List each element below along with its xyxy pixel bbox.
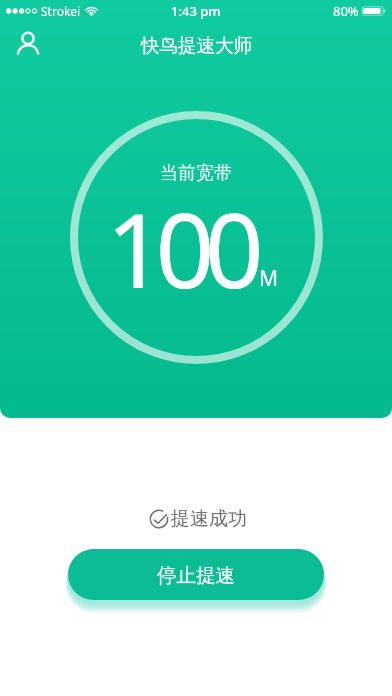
staticText: M: [259, 264, 279, 293]
staticText: 停止提速: [157, 563, 235, 588]
staticText: 80%: [333, 2, 359, 20]
button[interactable]: Account: [6, 22, 50, 64]
staticText: 提速成功: [171, 507, 247, 531]
staticText: Strokei: [41, 3, 81, 19]
staticText: 当前宽带: [160, 162, 232, 185]
staticText: 快鸟提速大师: [141, 34, 252, 57]
button[interactable]: 停止提速: [68, 549, 324, 600]
staticText: 1:43 pm: [171, 2, 221, 20]
staticText: 100: [106, 178, 255, 318]
